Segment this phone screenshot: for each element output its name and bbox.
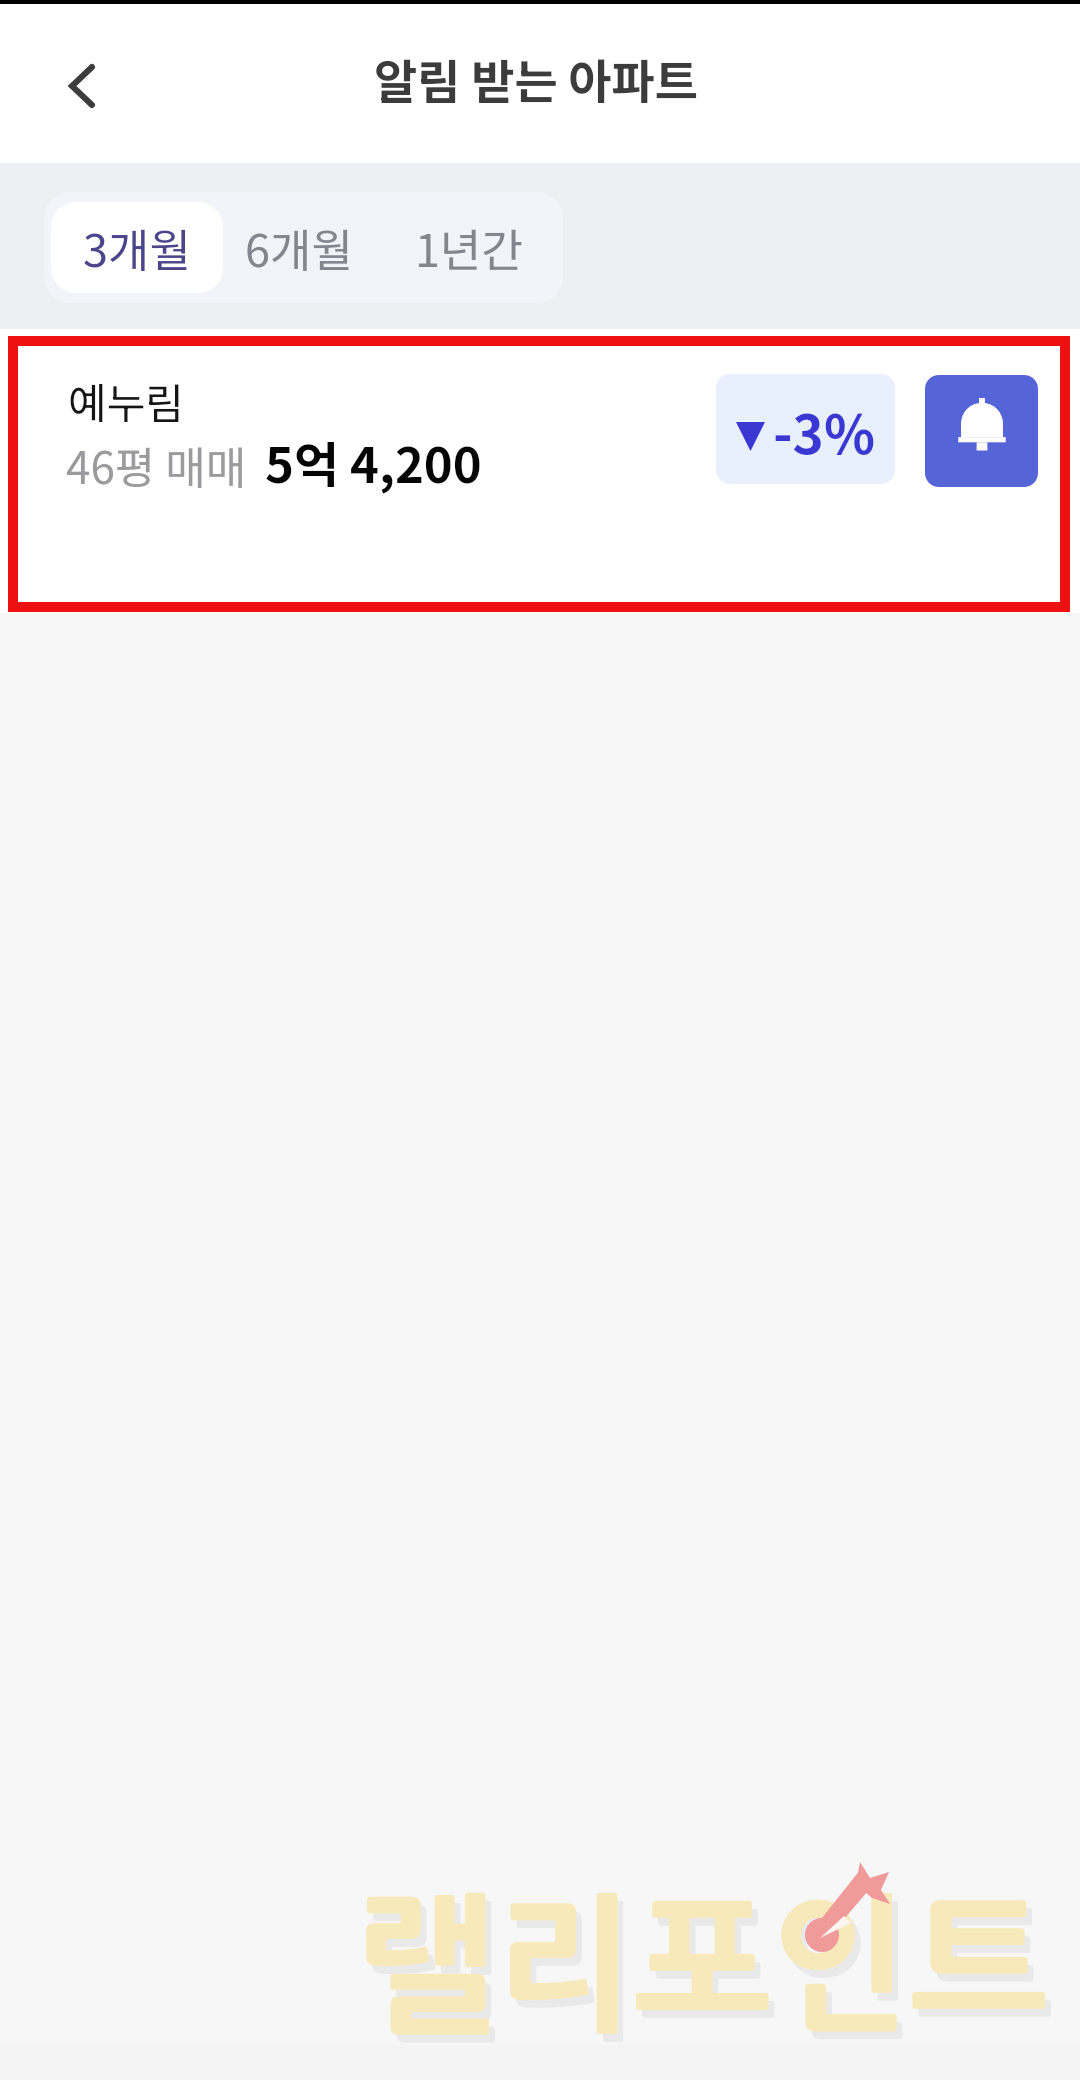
staticText: 5억 4,200 <box>265 426 482 497</box>
button[interactable]: 알림 설정 <box>925 375 1038 487</box>
staticText: 46평 매매 <box>66 433 247 497</box>
staticText: 알림 받는 아파트 <box>374 44 699 112</box>
button[interactable]: 6개월 <box>219 192 379 303</box>
button[interactable]: -3% <box>716 374 895 484</box>
staticText: 3개월 <box>83 215 191 280</box>
button[interactable]: 예누림 <box>0 329 1080 613</box>
button[interactable]: 1년간 <box>385 192 552 303</box>
staticText: 랠리포인트 <box>363 1900 1054 2047</box>
staticText: 1년간 <box>415 215 523 280</box>
button[interactable]: Back <box>50 52 114 116</box>
staticText: 예누림 <box>68 370 184 431</box>
staticText: 랠리포인트 <box>357 1892 1048 2039</box>
staticText: 6개월 <box>245 215 353 280</box>
staticText: -3% <box>773 393 875 470</box>
button[interactable]: 3개월 <box>51 202 223 293</box>
